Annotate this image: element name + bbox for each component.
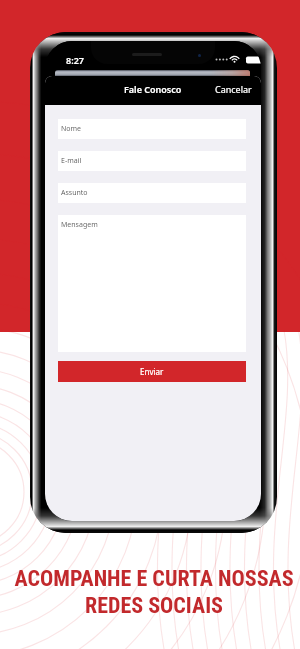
staticText: Mensagem [61, 220, 98, 230]
staticText: ACOMPANHE E CURTA NOSSAS [14, 566, 294, 592]
button[interactable]: Mensagem [58, 215, 246, 352]
staticText: Nome [61, 124, 82, 134]
button[interactable]: E-mail [58, 151, 246, 171]
staticText: Enviar [140, 366, 164, 377]
staticText: Cancelar [215, 83, 252, 95]
button[interactable]: Nome [58, 119, 246, 139]
staticText: 8:27 [66, 54, 84, 66]
staticText: Assunto [61, 188, 88, 198]
staticText: Fale Conosco [124, 83, 182, 95]
button[interactable]: Cancelar [207, 79, 261, 99]
staticText: E-mail [61, 156, 82, 166]
button[interactable]: Assunto [58, 183, 246, 203]
button[interactable]: Enviar [58, 361, 246, 382]
staticText: REDES SOCIAIS [85, 593, 223, 619]
